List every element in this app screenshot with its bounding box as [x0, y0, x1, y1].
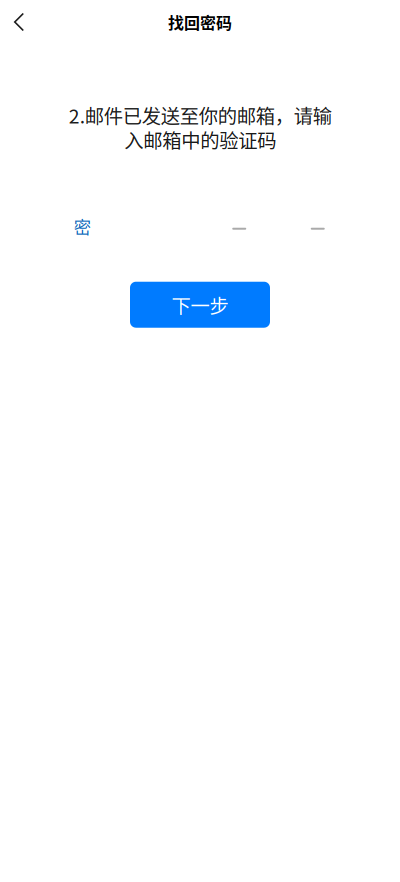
staticText: 找回密码: [168, 10, 232, 34]
button[interactable]: Verification code: [43, 214, 357, 240]
staticText: 下一步: [171, 292, 228, 317]
staticText: 2.邮件已发送至你的邮箱，请输入邮箱中的验证码: [68, 103, 331, 152]
staticText: 密: [74, 214, 91, 239]
button[interactable]: Back: [0, 1, 38, 43]
button[interactable]: 下一步: [130, 282, 270, 328]
